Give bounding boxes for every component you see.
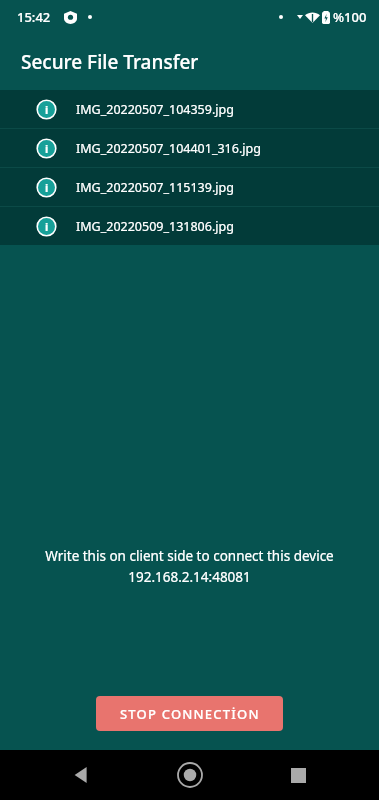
button[interactable]: i [0,207,379,245]
staticText: IMG_20220509_131806.jpg [76,218,234,235]
staticText: 15:42 [17,8,51,26]
staticText: i [45,141,49,156]
staticText: IMG_20220507_104359.jpg [76,101,234,118]
staticText: Write this on client side to connect thi… [45,547,334,565]
button[interactable]: i [0,168,379,206]
staticText: i [45,180,49,195]
button[interactable]: Back [53,750,109,800]
staticText: i [45,102,49,117]
staticText: STOP CONNECTİON [120,705,260,723]
staticText: Secure File Transfer [21,49,199,75]
staticText: IMG_20220507_104401_316.jpg [76,140,261,157]
button[interactable]: Recent apps [270,750,326,800]
staticText: 192.168.2.14:48081 [128,568,251,586]
button[interactable]: Home [162,750,218,800]
button[interactable]: STOP CONNECTİON [96,696,283,731]
staticText: %100 [333,8,367,26]
button[interactable]: i [0,90,379,128]
staticText: i [45,219,49,234]
staticText: IMG_20220507_115139.jpg [76,179,234,196]
button[interactable]: i [0,129,379,167]
